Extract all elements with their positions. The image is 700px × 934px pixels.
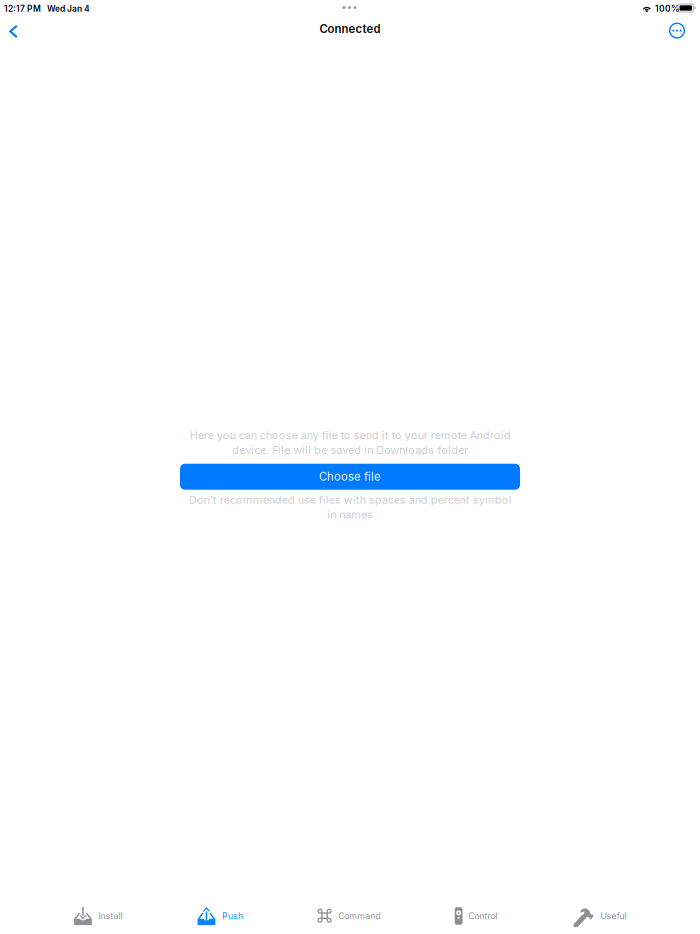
staticText: Command	[338, 911, 380, 921]
button[interactable]: Choose file	[180, 464, 520, 490]
staticText: Don't recommended use files with spaces …	[188, 493, 511, 521]
button[interactable]: Install	[73, 901, 122, 931]
staticText: Control	[469, 911, 498, 921]
button[interactable]: Control	[455, 901, 498, 931]
button[interactable]: Push	[197, 901, 243, 931]
button[interactable]: More options	[662, 18, 692, 44]
staticText: Push	[222, 911, 243, 921]
staticText: Install	[98, 911, 122, 921]
staticText: 100%	[655, 3, 680, 14]
staticText: Here you can choose any file to send it …	[189, 429, 510, 457]
button[interactable]: Useful	[572, 901, 626, 931]
staticText: Choose file	[319, 470, 381, 484]
staticText: Wed Jan 4	[47, 3, 90, 14]
staticText: Connected	[319, 22, 380, 36]
button[interactable]: Command	[317, 901, 380, 931]
button[interactable]: Back	[0, 18, 30, 44]
staticText: Useful	[600, 911, 626, 921]
staticText: 12:17 PM	[4, 3, 41, 14]
